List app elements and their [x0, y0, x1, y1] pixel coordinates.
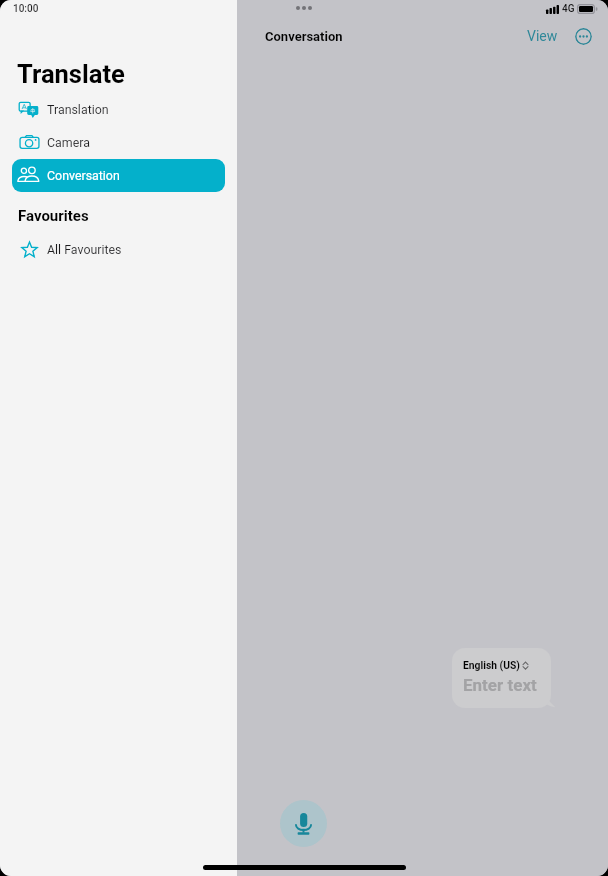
staticText: Translate: [17, 59, 125, 89]
staticText: Translation: [47, 102, 109, 117]
staticText: Camera: [47, 135, 90, 150]
staticText: View: [527, 28, 558, 44]
button[interactable]: Camera: [12, 126, 225, 159]
staticText: English (US): [463, 659, 520, 671]
staticText: 10:00: [13, 3, 39, 15]
staticText: All Favourites: [47, 242, 122, 257]
staticText: Enter text: [463, 675, 537, 695]
button[interactable]: Conversation: [12, 159, 225, 192]
button[interactable]: Start speaking: [280, 800, 327, 847]
button[interactable]: English (US): [452, 648, 551, 708]
staticText: 4G: [562, 3, 575, 15]
staticText: Conversation: [265, 29, 343, 44]
button[interactable]: More options: [575, 28, 592, 45]
staticText: Favourites: [18, 207, 89, 225]
button[interactable]: View: [521, 22, 564, 50]
button[interactable]: All Favourites: [12, 233, 225, 266]
button[interactable]: Translation: [12, 93, 225, 126]
staticText: Conversation: [47, 168, 120, 183]
